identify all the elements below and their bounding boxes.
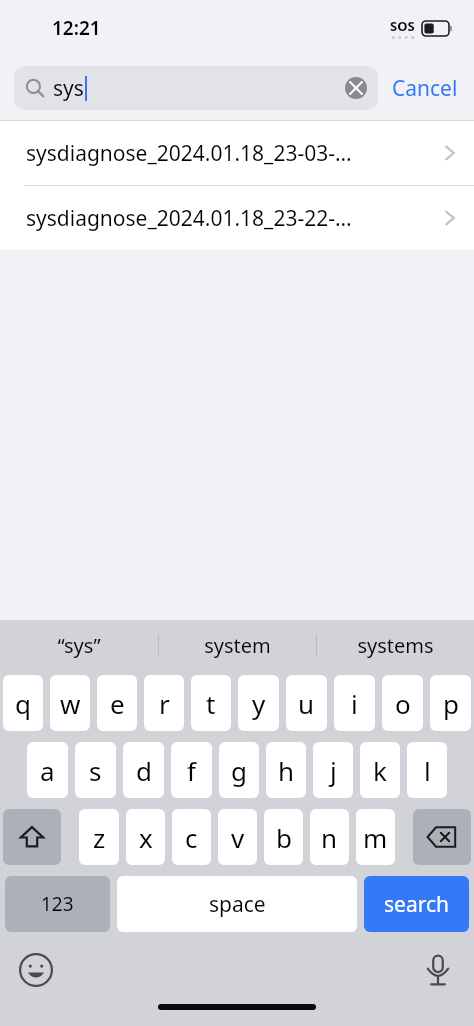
button[interactable]: f xyxy=(171,742,212,798)
button[interactable]: u xyxy=(286,675,327,731)
button[interactable]: search xyxy=(364,876,469,932)
staticText: m xyxy=(363,820,388,855)
staticText: s xyxy=(89,753,102,788)
staticText: z xyxy=(93,820,106,855)
button[interactable]: e xyxy=(97,675,137,731)
staticText: k xyxy=(373,753,387,788)
button[interactable]: v xyxy=(218,809,257,865)
button[interactable]: sysdiagnose_2024.01.18_23-22-… xyxy=(0,186,474,250)
staticText: system xyxy=(204,632,271,659)
button[interactable]: “sys” xyxy=(0,620,158,670)
staticText: n xyxy=(321,820,338,855)
button[interactable]: Shift xyxy=(3,809,61,865)
button[interactable]: j xyxy=(313,742,353,798)
button[interactable]: q xyxy=(3,675,43,731)
button[interactable]: m xyxy=(356,809,395,865)
staticText: c xyxy=(185,820,198,855)
button[interactable]: d xyxy=(123,742,164,798)
staticText: j xyxy=(330,753,337,788)
button[interactable]: c xyxy=(172,809,211,865)
button[interactable]: Emoji keyboard xyxy=(14,948,58,992)
button[interactable]: a xyxy=(27,742,68,798)
button[interactable]: y xyxy=(238,675,279,731)
staticText: sysdiagnose_2024.01.18_23-22-… xyxy=(26,204,438,233)
staticText: SOS xyxy=(390,17,415,35)
staticText: r xyxy=(159,686,170,721)
button[interactable]: n xyxy=(310,809,349,865)
button[interactable]: i xyxy=(334,675,375,731)
button[interactable]: 123 xyxy=(5,876,110,932)
staticText: “sys” xyxy=(57,632,101,659)
staticText: y xyxy=(252,686,266,721)
staticText: x xyxy=(139,820,153,855)
staticText: systems xyxy=(357,632,434,659)
staticText: e xyxy=(110,686,125,721)
button[interactable]: w xyxy=(50,675,90,731)
button[interactable]: space xyxy=(117,876,357,932)
staticText: h xyxy=(278,753,295,788)
staticText: g xyxy=(231,753,247,788)
button[interactable]: Clear text xyxy=(345,77,367,99)
button[interactable]: sysdiagnose_2024.01.18_23-03-… xyxy=(0,121,474,185)
staticText: b xyxy=(276,820,292,855)
staticText: 12:21 xyxy=(52,15,101,41)
button[interactable]: o xyxy=(382,675,423,731)
staticText: sys xyxy=(53,74,84,103)
button[interactable]: k xyxy=(360,742,400,798)
button[interactable]: systems xyxy=(317,620,474,670)
staticText: Cancel xyxy=(392,74,458,103)
staticText: f xyxy=(187,753,196,788)
button[interactable]: b xyxy=(264,809,303,865)
staticText: p xyxy=(443,686,459,721)
staticText: o xyxy=(395,686,411,721)
staticText: v xyxy=(231,820,245,855)
button[interactable]: h xyxy=(266,742,306,798)
staticText: space xyxy=(209,890,266,919)
staticText: u xyxy=(298,686,315,721)
button[interactable]: r xyxy=(144,675,184,731)
button[interactable]: s xyxy=(75,742,116,798)
staticText: i xyxy=(351,686,358,721)
button[interactable]: g xyxy=(219,742,259,798)
button[interactable]: t xyxy=(191,675,231,731)
staticText: l xyxy=(424,753,431,788)
button[interactable]: Dictation xyxy=(416,948,460,992)
button[interactable]: Backspace xyxy=(413,809,471,865)
button[interactable]: sys xyxy=(14,66,378,110)
staticText: search xyxy=(384,890,449,919)
staticText: d xyxy=(136,753,152,788)
staticText: 123 xyxy=(41,891,74,917)
button[interactable]: system xyxy=(159,620,316,670)
button[interactable]: x xyxy=(126,809,165,865)
button[interactable]: Cancel xyxy=(378,74,460,103)
staticText: q xyxy=(15,686,31,721)
button[interactable]: z xyxy=(79,809,119,865)
staticText: t xyxy=(206,686,216,721)
button[interactable]: p xyxy=(430,675,471,731)
button[interactable]: l xyxy=(407,742,447,798)
staticText: a xyxy=(40,753,55,788)
staticText: sysdiagnose_2024.01.18_23-03-… xyxy=(26,139,438,168)
staticText: w xyxy=(60,686,81,721)
